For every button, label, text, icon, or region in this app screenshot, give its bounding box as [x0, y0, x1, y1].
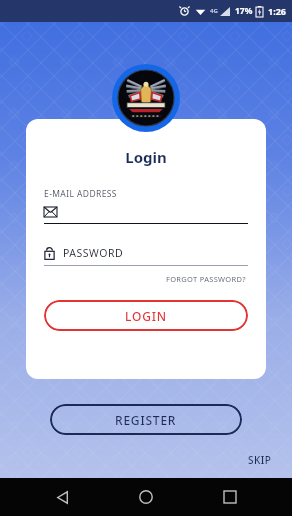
staticText: 4G — [210, 7, 218, 15]
staticText: LOGIN — [125, 308, 167, 324]
button[interactable]: Home — [124, 478, 168, 516]
button[interactable]: Back — [40, 478, 84, 516]
other: Email — [44, 207, 57, 217]
other: Password — [44, 247, 55, 260]
staticText: E-MAIL ADDRESS — [44, 188, 117, 200]
staticText: FORGOT PASSWORD? — [166, 274, 246, 284]
staticText: REGISTER — [115, 412, 177, 428]
button[interactable]: Email — [44, 207, 248, 217]
button[interactable]: REGISTER — [50, 404, 242, 435]
button[interactable]: FORGOT PASSWORD? — [164, 272, 248, 286]
staticText: PASSWORD — [63, 246, 124, 260]
staticText: SKIP — [248, 453, 272, 467]
button[interactable]: SKIP — [244, 449, 276, 471]
staticText: 1:26 — [268, 5, 286, 17]
staticText: 17% — [235, 5, 253, 17]
button[interactable]: LOGIN — [44, 300, 248, 331]
staticText: Login — [44, 147, 248, 167]
button[interactable]: Password — [44, 246, 248, 260]
button[interactable]: Recent apps — [208, 478, 252, 516]
